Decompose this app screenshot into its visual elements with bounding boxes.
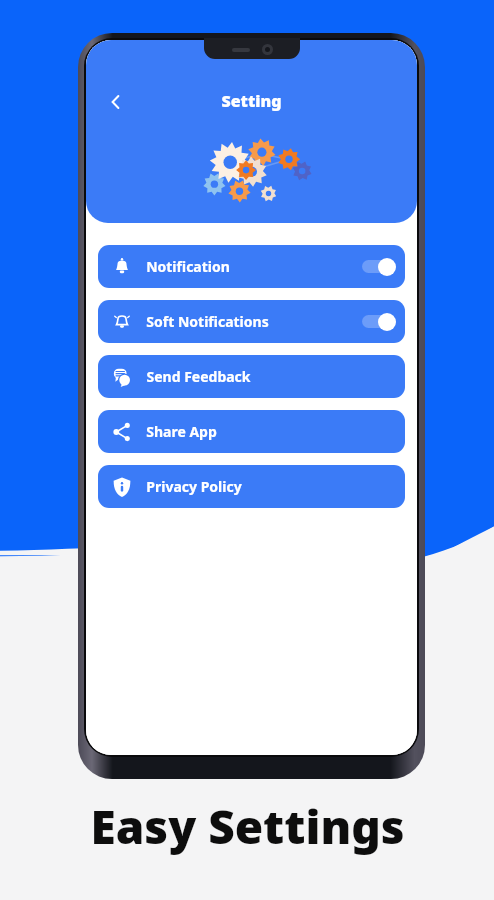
staticText: Setting [221,90,282,112]
button[interactable]: Send Feedback [98,355,405,398]
button[interactable]: Back [96,82,136,122]
button[interactable]: Toggle Notification [362,257,396,276]
staticText: Share App [146,422,217,441]
button[interactable]: Privacy Policy [98,465,405,508]
button[interactable]: Share App [98,410,405,453]
staticText: Easy Settings [90,795,405,858]
button[interactable]: Notification [98,245,405,288]
staticText: Notification [146,257,230,276]
button[interactable]: Toggle Soft Notifications [362,312,396,331]
staticText: Send Feedback [146,367,251,386]
button[interactable]: Soft Notifications [98,300,405,343]
staticText: Soft Notifications [146,312,269,331]
staticText: Privacy Policy [146,477,242,496]
